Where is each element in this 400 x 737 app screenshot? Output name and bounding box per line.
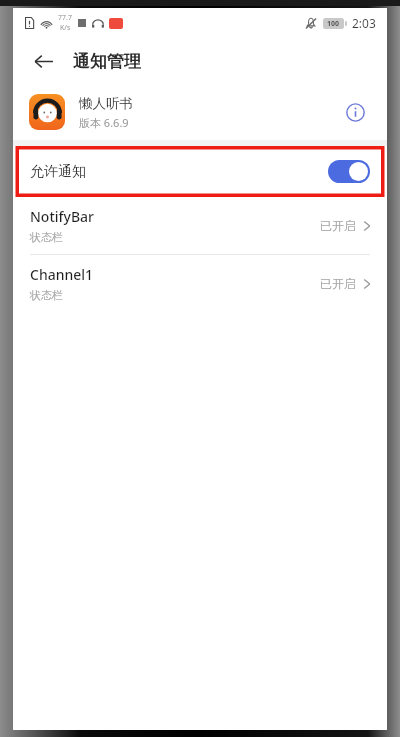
- button[interactable]: 允许通知: [19, 150, 381, 193]
- staticText: 版本 6.6.9: [79, 115, 129, 130]
- staticText: 已开启: [320, 276, 356, 291]
- staticText: Channel1: [30, 265, 94, 284]
- button[interactable]: Channel1: [13, 255, 387, 312]
- staticText: 已开启: [320, 218, 356, 233]
- button[interactable]: 懒人听书: [13, 84, 387, 140]
- staticText: 通知管理: [73, 51, 141, 72]
- button[interactable]: NotifyBar: [13, 197, 387, 254]
- staticText: 懒人听书: [79, 95, 133, 112]
- staticText: 77.7: [58, 13, 72, 23]
- staticText: 允许通知: [30, 163, 86, 181]
- staticText: NotifyBar: [30, 207, 95, 226]
- staticText: K/s: [60, 23, 71, 33]
- staticText: 状态栏: [30, 288, 63, 302]
- button[interactable]: 允许通知开关: [328, 160, 370, 183]
- staticText: 状态栏: [30, 230, 63, 244]
- button[interactable]: 返回: [23, 41, 63, 81]
- button[interactable]: 应用信息: [339, 96, 371, 128]
- staticText: 2:03: [352, 15, 376, 31]
- staticText: 100: [327, 19, 340, 29]
